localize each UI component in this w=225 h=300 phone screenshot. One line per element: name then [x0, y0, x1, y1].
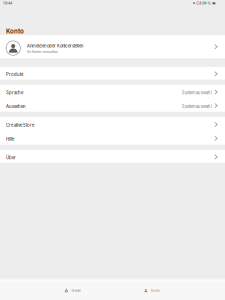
button[interactable]: Aussehen	[0, 98, 225, 112]
staticText: Systemauswahl	[182, 104, 212, 109]
staticText: Über	[6, 155, 16, 160]
button[interactable]: Konto	[137, 281, 167, 300]
staticText: Konto	[151, 288, 160, 293]
staticText: Aussehen	[6, 104, 26, 109]
staticText: Ihr Konto verwalten	[27, 49, 58, 54]
button[interactable]: Produkt	[0, 67, 225, 80]
button[interactable]: Über	[0, 150, 225, 163]
staticText: Creative Store	[6, 123, 34, 128]
button[interactable]: Sprache	[0, 85, 225, 98]
staticText: Systemauswahl	[182, 90, 212, 95]
button[interactable]: Hilfe	[0, 131, 225, 145]
button[interactable]: Gerät	[58, 281, 87, 300]
staticText: Anmelden oder Konto erstellen	[27, 43, 83, 48]
button[interactable]: Anmelden oder Konto erstellen	[0, 35, 225, 58]
staticText: Produkt	[6, 72, 23, 77]
staticText: Hilfe	[6, 136, 14, 142]
staticText: Konto	[6, 28, 24, 35]
staticText: 19:44	[3, 1, 12, 5]
staticText: Sprache	[6, 90, 23, 95]
staticText: Ca 84 %	[196, 1, 211, 5]
staticText: Gerät	[71, 288, 80, 293]
button[interactable]: Creative Store	[0, 117, 225, 131]
